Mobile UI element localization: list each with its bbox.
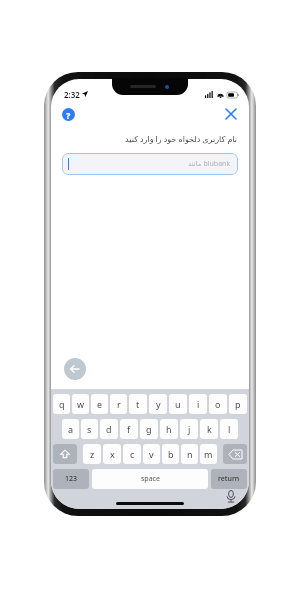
button[interactable]: space: [92, 469, 208, 489]
staticText: s: [87, 423, 92, 435]
staticText: a: [68, 423, 74, 435]
staticText: w: [77, 398, 85, 410]
button[interactable]: v: [143, 444, 160, 464]
staticText: 123: [65, 474, 78, 484]
button[interactable]: a: [62, 419, 79, 439]
staticText: o: [215, 398, 221, 410]
staticText: d: [106, 423, 112, 435]
button[interactable]: c: [123, 444, 141, 464]
button[interactable]: u: [169, 394, 187, 414]
staticText: u: [175, 398, 181, 410]
button[interactable]: m: [200, 444, 217, 464]
button[interactable]: b: [162, 444, 179, 464]
staticText: e: [97, 398, 103, 410]
staticText: c: [130, 448, 135, 460]
button[interactable]: k: [200, 419, 218, 439]
staticText: ?: [66, 109, 71, 121]
staticText: l: [228, 423, 231, 435]
button[interactable]: x: [103, 444, 121, 464]
staticText: مانند blubank: [188, 159, 231, 169]
button[interactable]: return: [211, 469, 247, 489]
button[interactable]: j: [180, 419, 198, 439]
button[interactable]: d: [100, 419, 118, 439]
button[interactable]: l: [220, 419, 238, 439]
staticText: i: [197, 398, 200, 410]
button[interactable]: i: [189, 394, 207, 414]
staticText: space: [141, 474, 160, 484]
button[interactable]: Backspace: [223, 444, 247, 464]
staticText: h: [166, 423, 172, 435]
staticText: f: [127, 423, 131, 435]
button[interactable]: Shift: [53, 444, 77, 464]
button[interactable]: z: [83, 444, 101, 464]
staticText: q: [59, 398, 65, 410]
staticText: 2:32: [64, 89, 80, 100]
staticText: v: [149, 448, 154, 460]
staticText: p: [235, 398, 241, 410]
button[interactable]: e: [91, 394, 108, 414]
button[interactable]: f: [120, 419, 138, 439]
staticText: x: [110, 448, 115, 460]
button[interactable]: p: [229, 394, 247, 414]
staticText: r: [117, 398, 121, 410]
button[interactable]: t: [129, 394, 147, 414]
button[interactable]: g: [140, 419, 158, 439]
button[interactable]: 123: [53, 469, 89, 489]
button[interactable]: مانند blubank: [62, 153, 238, 175]
staticText: j: [188, 423, 191, 435]
staticText: نام کاربری دلخواه خود را وارد کنید: [51, 133, 237, 144]
button[interactable]: s: [81, 419, 98, 439]
button[interactable]: n: [181, 444, 198, 464]
staticText: k: [207, 423, 212, 435]
button[interactable]: h: [160, 419, 178, 439]
staticText: z: [90, 448, 95, 460]
staticText: t: [136, 398, 140, 410]
staticText: n: [187, 448, 193, 460]
button[interactable]: Back: [64, 358, 86, 380]
staticText: b: [168, 448, 174, 460]
staticText: g: [146, 423, 152, 435]
button[interactable]: Help: [62, 108, 75, 121]
button[interactable]: Close: [222, 105, 240, 123]
button[interactable]: r: [110, 394, 127, 414]
button[interactable]: o: [209, 394, 227, 414]
staticText: return: [218, 474, 240, 484]
button[interactable]: w: [72, 394, 89, 414]
button[interactable]: Dictate: [223, 488, 239, 504]
button[interactable]: y: [149, 394, 167, 414]
staticText: m: [204, 448, 213, 460]
button[interactable]: q: [53, 394, 70, 414]
staticText: y: [156, 398, 161, 410]
